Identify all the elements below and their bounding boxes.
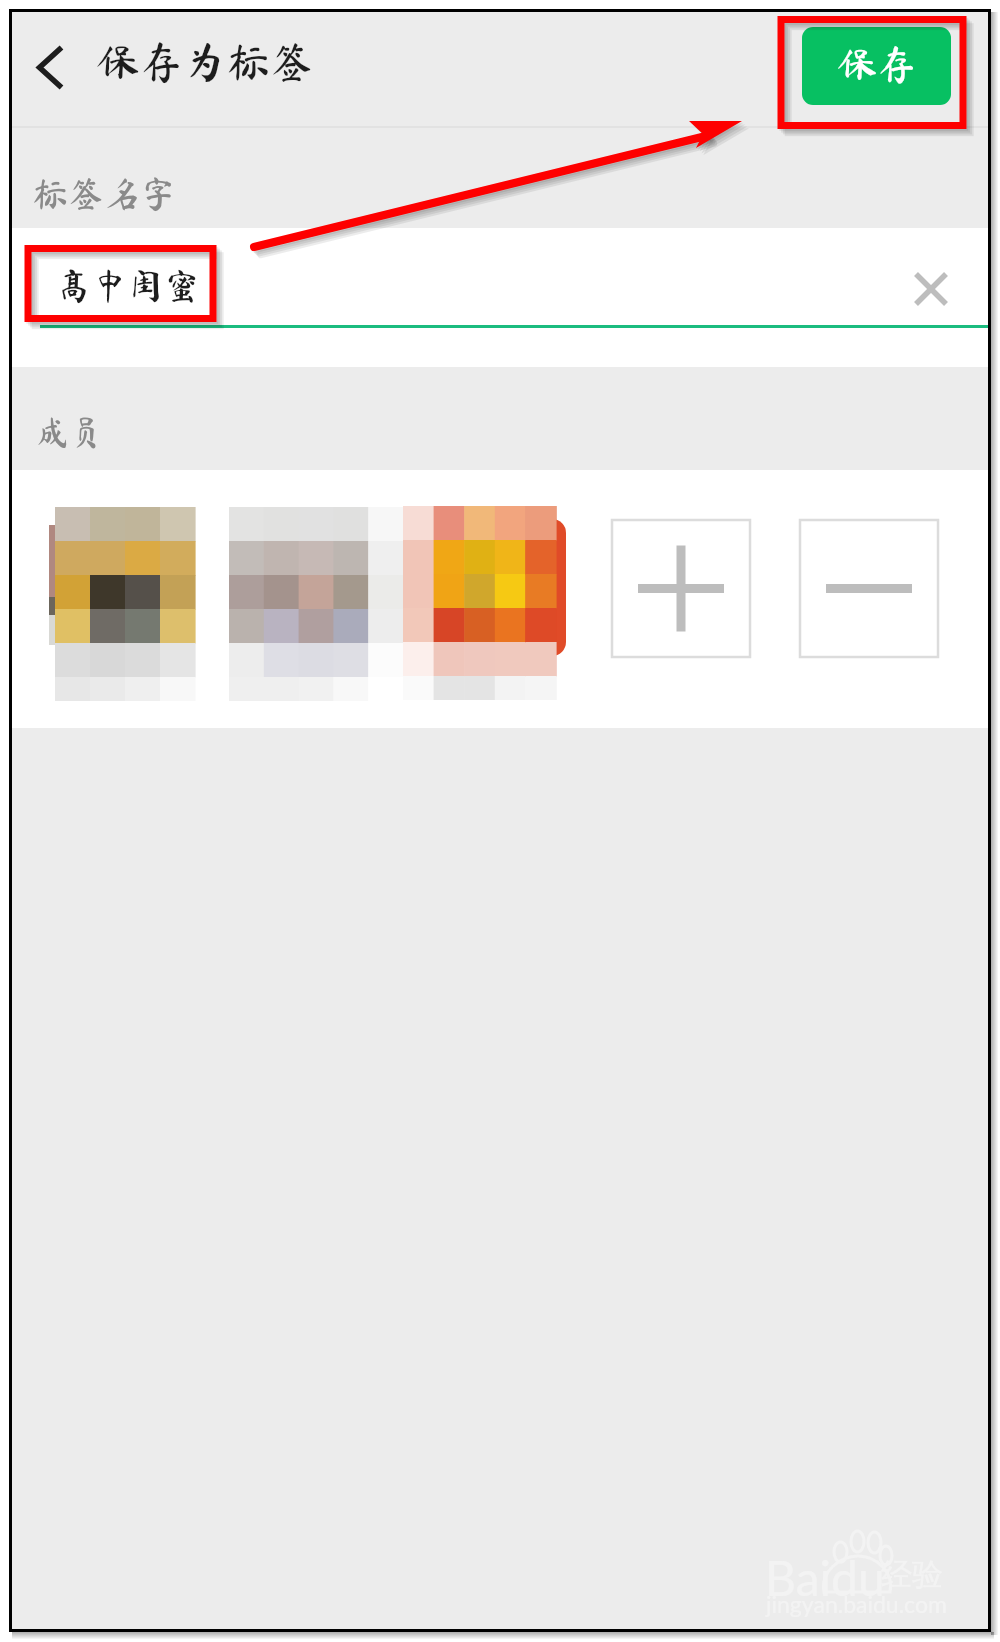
staticText: 标签名字 — [32, 175, 177, 211]
button[interactable]: Back — [12, 11, 88, 123]
button[interactable] — [229, 507, 403, 701]
button[interactable]: Add member — [612, 520, 750, 657]
button[interactable]: Remove member — [800, 520, 938, 657]
staticText: 成员 — [35, 415, 103, 449]
button[interactable]: Clear text — [884, 242, 977, 335]
staticText: Baidu — [765, 1549, 885, 1607]
button[interactable] — [403, 506, 556, 700]
staticText: 保存 — [837, 44, 917, 84]
button[interactable]: 保存 — [802, 27, 951, 105]
staticText: 保存为标签 — [96, 40, 314, 83]
button[interactable] — [55, 507, 195, 701]
staticText: 高中闺蜜 — [56, 267, 201, 303]
